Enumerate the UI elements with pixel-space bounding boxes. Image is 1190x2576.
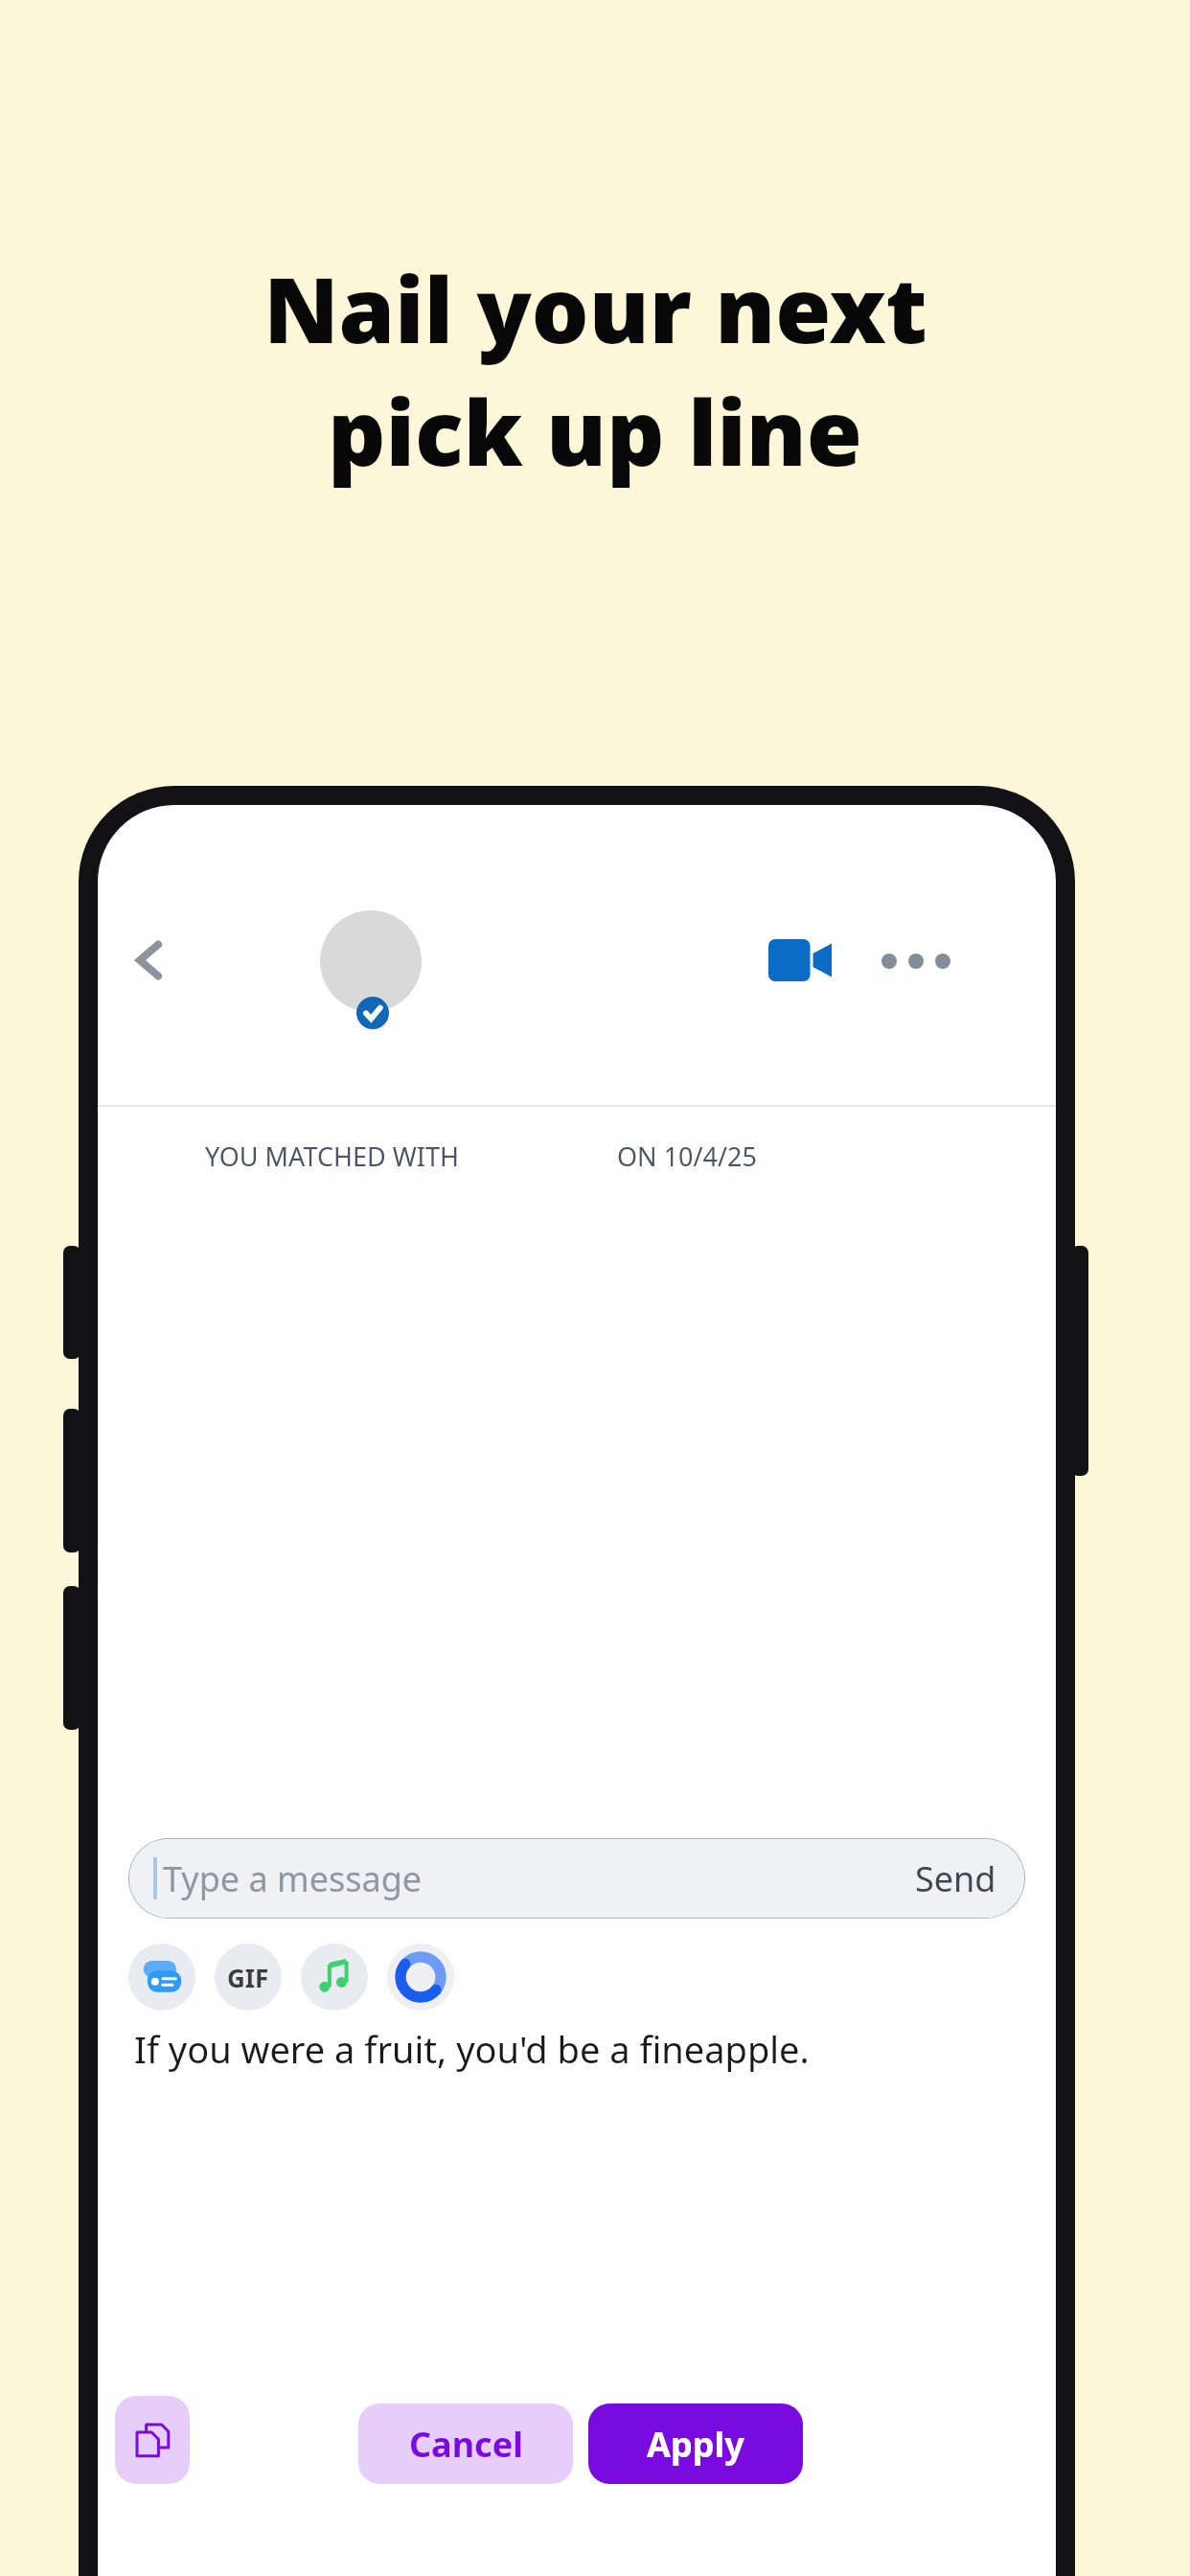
button[interactable]: Cancel	[358, 2403, 573, 2484]
button[interactable]: Copy	[115, 2396, 190, 2484]
button[interactable]: Profile photo	[320, 910, 422, 1012]
staticText: Type a message	[163, 1855, 423, 1902]
staticText: Nail your next	[263, 247, 927, 370]
staticText: YOU MATCHED WITH	[205, 1138, 460, 1174]
staticText: pick up line	[328, 370, 862, 493]
button[interactable]: Apps	[387, 1943, 454, 2011]
staticText: ON 10/4/25	[617, 1138, 757, 1174]
button[interactable]: Stickers	[128, 1943, 195, 2011]
button[interactable]: More options	[881, 939, 968, 983]
staticText: Apply	[647, 2421, 744, 2468]
staticText: Cancel	[409, 2421, 523, 2468]
button[interactable]: Video call	[759, 930, 841, 991]
staticText: If you were a fruit, you'd be a fineappl…	[134, 2024, 810, 2074]
staticText: GIF	[227, 1961, 269, 1994]
button[interactable]: Music	[301, 1943, 368, 2011]
button[interactable]: GIF	[215, 1943, 282, 2011]
staticText: Send	[915, 1855, 996, 1902]
button[interactable]: Type a message	[128, 1838, 1025, 1919]
button[interactable]: Back	[111, 922, 188, 999]
button[interactable]: Apply	[588, 2403, 803, 2484]
